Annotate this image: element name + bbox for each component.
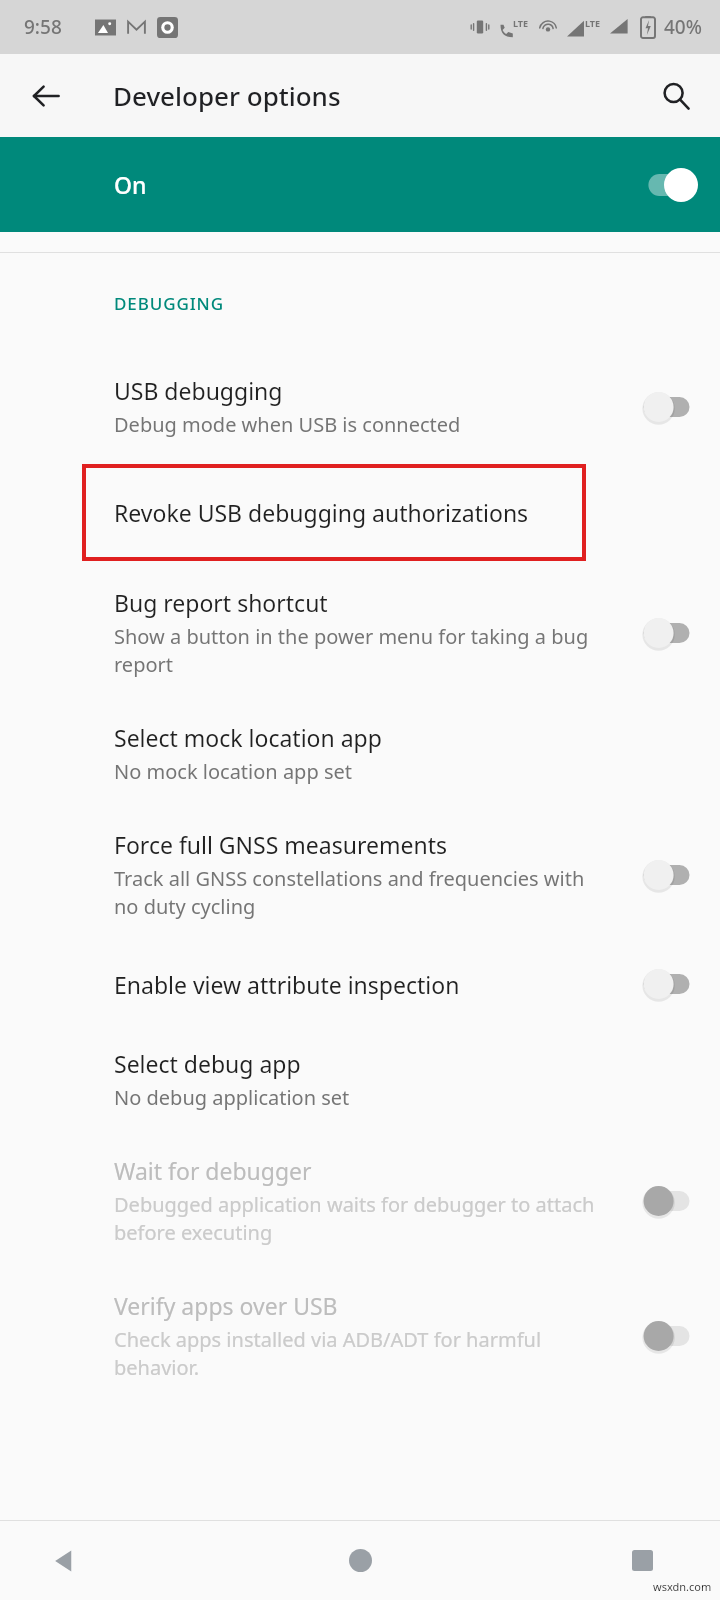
staticText: Revoke USB debugging authorizations bbox=[114, 497, 529, 528]
staticText: LTE bbox=[585, 17, 601, 29]
staticText: wsxdn.com bbox=[653, 1579, 712, 1594]
button[interactable]: Enable view attribute inspection bbox=[0, 942, 720, 1026]
button[interactable]: Wait for debugger bbox=[0, 1133, 720, 1268]
staticText: On bbox=[114, 169, 147, 200]
staticText: Bug report shortcut bbox=[114, 587, 328, 618]
button[interactable]: Back bbox=[20, 70, 72, 122]
staticText: Select debug app bbox=[114, 1048, 301, 1079]
staticText: Wait for debugger bbox=[114, 1155, 312, 1186]
button[interactable]: Search bbox=[650, 70, 702, 122]
button[interactable]: Select debug app bbox=[0, 1026, 720, 1133]
staticText: USB debugging bbox=[114, 375, 283, 406]
staticText: Select mock location app bbox=[114, 722, 382, 753]
button[interactable]: Lock screen when trust is lost bbox=[0, 137, 720, 250]
staticText: LTE bbox=[513, 17, 529, 29]
button[interactable]: Recent apps bbox=[480, 1521, 720, 1600]
staticText: Show a button in the power menu for taki… bbox=[114, 623, 596, 678]
button[interactable]: Bug report shortcut bbox=[0, 565, 720, 700]
button[interactable]: On bbox=[0, 137, 720, 232]
staticText: Force full GNSS measurements bbox=[114, 829, 447, 860]
staticText: Track all GNSS constellations and freque… bbox=[114, 865, 596, 920]
staticText: Enable view attribute inspection bbox=[114, 969, 460, 1000]
button[interactable]: Select mock location app bbox=[0, 700, 720, 807]
staticText: DEBUGGING bbox=[114, 292, 224, 315]
staticText: Verify apps over USB bbox=[114, 1290, 338, 1321]
staticText: No mock location app set bbox=[114, 758, 352, 785]
staticText: Debug mode when USB is connected bbox=[114, 411, 461, 438]
staticText: 9:58 bbox=[24, 14, 62, 40]
button[interactable]: Verify apps over USB bbox=[0, 1268, 720, 1403]
staticText: Debugged application waits for debugger … bbox=[114, 1191, 596, 1246]
button[interactable]: Home bbox=[240, 1521, 480, 1600]
staticText: Check apps installed via ADB/ADT for har… bbox=[114, 1326, 596, 1381]
staticText: Developer options bbox=[113, 78, 341, 113]
button[interactable]: Revoke USB debugging authorizations bbox=[84, 466, 584, 559]
staticText: If enabled, the device will lock when th… bbox=[114, 173, 596, 228]
button[interactable]: USB debugging bbox=[0, 353, 720, 460]
button[interactable]: Back bbox=[0, 1521, 240, 1600]
staticText: 40% bbox=[664, 14, 702, 40]
staticText: No debug application set bbox=[114, 1084, 350, 1111]
button[interactable]: Force full GNSS measurements bbox=[0, 807, 720, 942]
